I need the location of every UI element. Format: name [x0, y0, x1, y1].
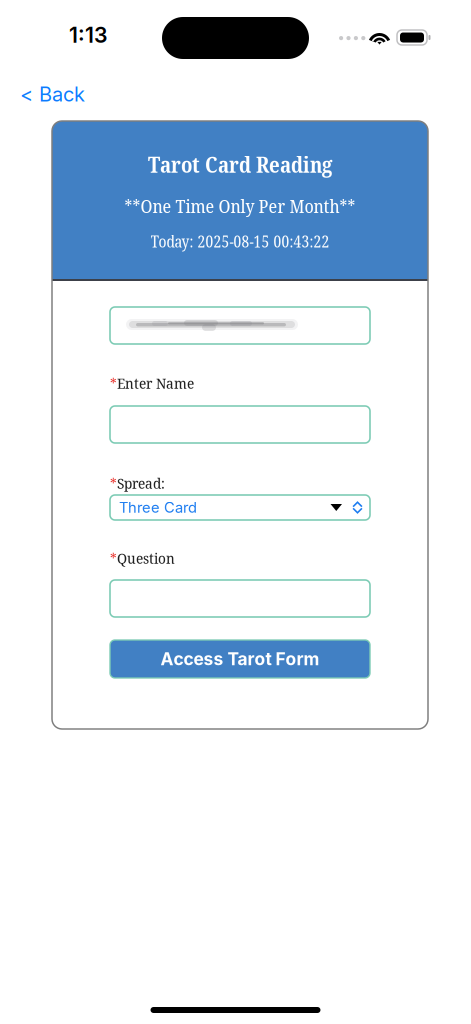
staticText: 1:13: [69, 22, 108, 48]
staticText: Question: [117, 548, 175, 568]
staticText: Three Card: [119, 499, 197, 516]
staticText: Today: 2025-08-15 00:43:22: [150, 230, 329, 252]
staticText: *: [110, 473, 117, 493]
button[interactable]: Three Card: [110, 495, 370, 520]
staticText: **One Time Only Per Month**: [124, 193, 355, 218]
staticText: *: [110, 373, 117, 393]
staticText: Access Tarot Form: [160, 648, 319, 669]
staticText: < Back: [20, 82, 85, 106]
button[interactable]: Access Tarot Form: [110, 640, 370, 678]
button[interactable]: < Back: [0, 74, 97, 114]
staticText: Enter Name: [117, 373, 194, 393]
staticText: Spread:: [117, 473, 165, 493]
staticText: Tarot Card Reading: [148, 150, 332, 179]
staticText: *: [110, 548, 117, 568]
